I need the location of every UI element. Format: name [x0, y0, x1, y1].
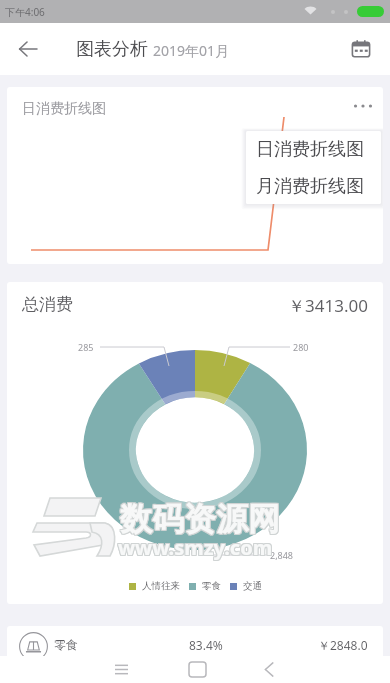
staticText: 月消费折线图 — [256, 175, 364, 198]
staticText: 数码资源网 — [121, 498, 281, 538]
staticText: www.smzy.com — [117, 535, 272, 562]
staticText: 83.4% — [189, 637, 223, 653]
staticText: 数码资源网 — [120, 498, 280, 538]
staticText: ￥2848.0 — [318, 637, 368, 653]
staticText: 下午4:06 — [5, 5, 45, 19]
staticText: www.smzy.com — [119, 533, 274, 560]
staticText: ￥3413.00 — [288, 294, 368, 317]
button[interactable]: Back — [7, 28, 49, 70]
staticText: www.smzy.com — [119, 535, 274, 562]
staticText: 285 — [78, 341, 94, 353]
staticText: 280 — [293, 341, 309, 353]
button[interactable]: 月消费折线图 — [246, 168, 381, 204]
staticText: www.smzy.com — [119, 534, 274, 561]
button[interactable]: 日消费折线图 — [246, 131, 381, 168]
staticText: 数码资源网 — [121, 499, 281, 539]
staticText: www.smzy.com — [117, 534, 272, 561]
staticText: www.smzy.com — [118, 534, 273, 561]
staticText: 数码资源网 — [119, 499, 279, 539]
staticText: 人情往来 — [142, 580, 180, 592]
staticText: 数码资源网 — [120, 499, 280, 539]
button[interactable]: Back — [243, 656, 295, 683]
staticText: 日消费折线图 — [22, 100, 106, 118]
staticText: 数码资源网 — [119, 498, 279, 538]
staticText: 零食 — [202, 580, 221, 592]
staticText: 2,848 — [270, 549, 294, 561]
staticText: 数码资源网 — [121, 500, 281, 540]
staticText: www.smzy.com — [118, 535, 273, 562]
staticText: 数码资源网 — [120, 500, 280, 540]
staticText: 总消费 — [22, 294, 73, 315]
staticText: 2019年01月 — [153, 41, 230, 60]
button[interactable]: More options — [345, 88, 381, 124]
staticText: www.smzy.com — [118, 533, 273, 560]
staticText: www.smzy.com — [117, 533, 272, 560]
staticText: 交通 — [243, 580, 262, 592]
button[interactable]: Home — [171, 656, 223, 683]
staticText: 零食 — [54, 637, 78, 652]
button[interactable]: Recent apps — [95, 656, 147, 683]
staticText: 图表分析 — [76, 38, 148, 61]
button[interactable]: Select date — [340, 28, 382, 70]
staticText: 日消费折线图 — [256, 138, 364, 161]
staticText: 数码资源网 — [119, 500, 279, 540]
button[interactable]: Snacks category — [7, 626, 383, 666]
other: Snacks category — [19, 632, 48, 661]
